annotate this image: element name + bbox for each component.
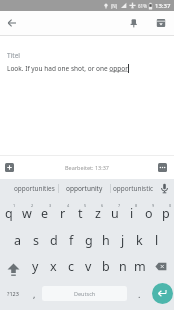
button[interactable]: ,	[26, 280, 42, 307]
button[interactable]: k	[131, 227, 148, 253]
staticText: j	[121, 232, 125, 249]
button[interactable]	[155, 179, 174, 198]
staticText: r	[60, 205, 66, 222]
staticText: opportunities	[14, 184, 55, 193]
button[interactable]: u	[106, 200, 123, 227]
button[interactable]: p	[157, 200, 174, 227]
button[interactable]	[158, 163, 167, 172]
button[interactable]: z	[89, 200, 106, 227]
staticText: 2	[31, 203, 34, 208]
button[interactable]	[122, 12, 144, 34]
button[interactable]	[150, 12, 172, 34]
staticText: opportunity	[66, 184, 103, 193]
button[interactable]: Deutsch	[42, 286, 127, 301]
button[interactable]: d	[45, 227, 63, 253]
button[interactable]: s	[27, 227, 45, 253]
staticText: ?123	[7, 290, 19, 297]
staticText: i	[130, 205, 134, 222]
staticText: 0	[169, 203, 172, 208]
button[interactable]: .	[127, 280, 151, 307]
button[interactable]: b	[97, 253, 114, 280]
button[interactable]: n	[114, 253, 131, 280]
button[interactable]: h	[97, 227, 114, 253]
button[interactable]	[0, 11, 24, 35]
staticText: t	[78, 205, 83, 222]
staticText: Look. If you had one shot, or one oppor	[7, 64, 128, 73]
button[interactable]: m	[131, 253, 148, 280]
staticText: Deutsch	[74, 290, 96, 297]
staticText: Bearbeitet: 13:37	[65, 164, 109, 171]
staticText: y	[32, 258, 39, 275]
button[interactable]: opportunistic	[111, 179, 155, 198]
button[interactable]: g	[80, 227, 97, 253]
staticText: u	[111, 205, 119, 222]
button[interactable]: x	[44, 253, 62, 280]
button[interactable]: opportunity	[59, 179, 110, 198]
button[interactable]: y	[26, 253, 44, 280]
staticText: l	[155, 232, 159, 249]
staticText: Titel	[7, 51, 20, 60]
button[interactable]: t	[72, 200, 89, 227]
staticText: o	[145, 205, 153, 222]
button[interactable]: j	[114, 227, 131, 253]
staticText: g	[85, 232, 93, 249]
button[interactable]	[5, 163, 14, 172]
button[interactable]	[152, 283, 173, 304]
button[interactable]: r	[54, 200, 72, 227]
staticText: b	[102, 258, 110, 275]
staticText: k	[136, 232, 143, 249]
button[interactable]: e	[36, 200, 54, 227]
staticText: .	[138, 288, 141, 300]
staticText: v	[85, 258, 92, 275]
staticText: 5	[84, 203, 87, 208]
button[interactable]: w	[18, 200, 36, 227]
button[interactable]: l	[148, 227, 165, 253]
button[interactable]: q	[0, 200, 18, 227]
button[interactable]: o	[140, 200, 157, 227]
staticText: e	[41, 205, 49, 222]
staticText: d	[50, 232, 58, 249]
staticText: w	[22, 205, 32, 222]
button[interactable]: ?123	[0, 280, 26, 307]
staticText: h	[102, 232, 110, 249]
staticText: x	[50, 258, 57, 275]
staticText: m	[134, 258, 146, 275]
staticText: p	[162, 205, 170, 222]
button[interactable]: i	[123, 200, 140, 227]
staticText: 7	[118, 203, 121, 208]
staticText: opportunistic	[113, 184, 154, 193]
button[interactable]	[148, 253, 174, 280]
staticText: q	[5, 205, 13, 222]
staticText: n	[119, 258, 127, 275]
staticText: c	[68, 258, 75, 275]
staticText: 4	[67, 203, 70, 208]
staticText: 6	[101, 203, 104, 208]
staticText: 1	[13, 203, 16, 208]
staticText: 61%	[138, 3, 147, 9]
button[interactable]: a	[9, 227, 27, 253]
button[interactable]: v	[80, 253, 97, 280]
staticText: s	[33, 232, 39, 249]
button[interactable]: opportunities	[0, 179, 58, 198]
staticText: 9	[152, 203, 155, 208]
staticText: a	[14, 232, 22, 249]
staticText: z	[95, 205, 101, 222]
button[interactable]	[0, 253, 26, 280]
staticText: ,	[33, 288, 36, 300]
staticText: (N)	[111, 3, 118, 9]
staticText: 8	[135, 203, 138, 208]
staticText: 3	[49, 203, 52, 208]
button[interactable]: f	[63, 227, 80, 253]
button[interactable]: c	[62, 253, 80, 280]
staticText: 13:37	[155, 2, 171, 10]
staticText: f	[69, 232, 74, 249]
